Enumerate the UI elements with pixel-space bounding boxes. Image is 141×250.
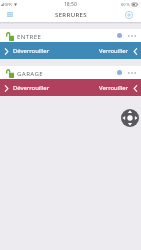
button[interactable]: Verrouiller: [99, 47, 138, 55]
button[interactable]: Menu: [4, 9, 15, 20]
button[interactable]: Options: [127, 31, 137, 40]
staticText: 18:50: [64, 1, 77, 8]
button[interactable]: Options: [127, 68, 137, 77]
button[interactable]: Ajouter: [123, 9, 134, 20]
staticText: Verrouiller: [99, 47, 129, 55]
button[interactable]: Déverrouiller: [4, 84, 50, 92]
staticText: ENTRÉE: [17, 32, 42, 40]
button[interactable]: GARAGE: [0, 66, 141, 79]
button[interactable]: Déverrouiller: [4, 47, 50, 55]
staticText: SERRURES: [55, 11, 87, 19]
staticText: Déverrouiller: [13, 84, 50, 92]
staticText: Verrouiller: [99, 84, 129, 92]
button[interactable]: Contrôle directionnel: [121, 109, 139, 127]
staticText: GARAGE: [17, 69, 44, 77]
staticText: Déverrouiller: [13, 47, 50, 55]
staticText: SFR: [5, 2, 12, 7]
button[interactable]: ENTRÉE: [0, 29, 141, 42]
staticText: 60 %: [121, 2, 130, 7]
button[interactable]: Verrouiller: [99, 84, 138, 92]
